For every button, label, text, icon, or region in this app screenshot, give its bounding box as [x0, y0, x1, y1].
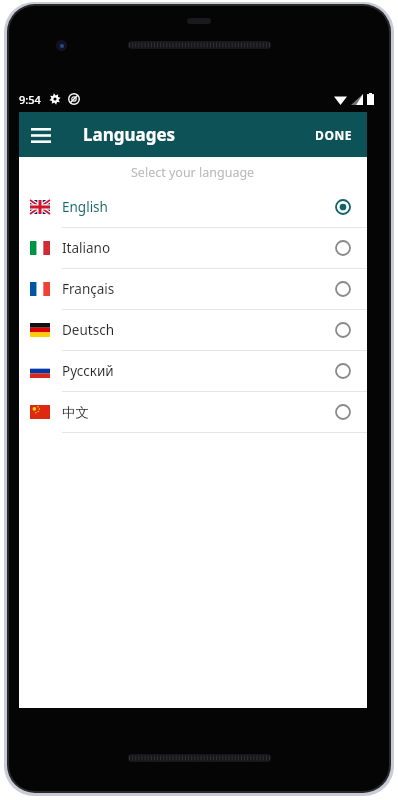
staticText: Languages [83, 123, 176, 146]
button[interactable]: Français [19, 269, 367, 310]
staticText: 9:54 [19, 92, 41, 107]
staticText: Italiano [62, 239, 111, 257]
staticText: Français [62, 280, 115, 298]
staticText: 中文 [62, 404, 89, 421]
staticText: DONE [315, 127, 353, 143]
staticText: Deutsch [62, 321, 114, 339]
button[interactable]: Deutsch [19, 310, 367, 351]
staticText: English [62, 198, 108, 216]
button[interactable]: 中文 [19, 392, 367, 433]
button[interactable]: DONE [301, 112, 367, 157]
button[interactable]: Italiano [19, 228, 367, 269]
staticText: Русский [62, 362, 114, 380]
button[interactable]: Open navigation menu [19, 113, 63, 157]
button[interactable]: English [19, 187, 367, 228]
button[interactable]: Русский [19, 351, 367, 392]
staticText: Select your language [131, 164, 255, 181]
